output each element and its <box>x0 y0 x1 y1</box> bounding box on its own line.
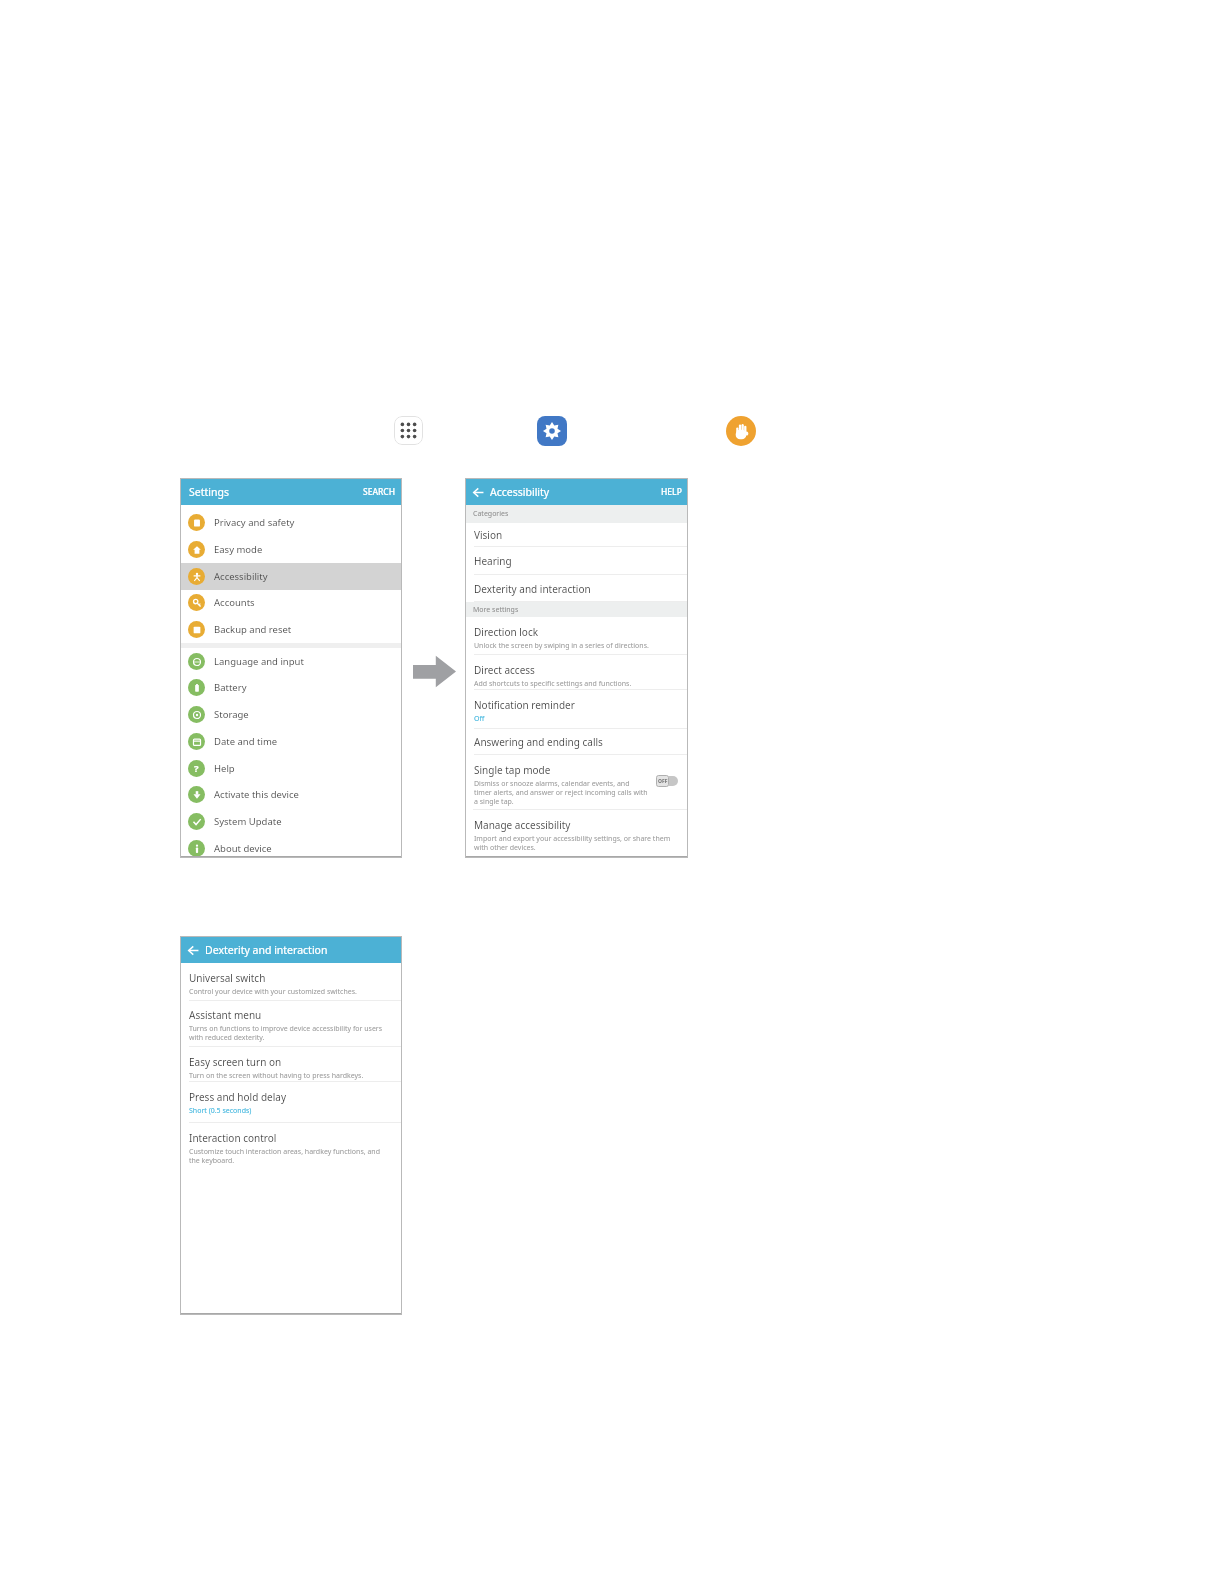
staticText: Vision <box>474 528 503 542</box>
button[interactable]: Assistant menu <box>180 1000 402 1047</box>
button[interactable]: Direction lock <box>465 617 688 655</box>
button[interactable]: Back <box>471 485 485 499</box>
staticText: Universal switch <box>189 971 266 985</box>
staticText: Categories <box>473 509 509 519</box>
staticText: Dexterity and interaction <box>205 943 328 957</box>
staticText: Notification reminder <box>474 698 575 712</box>
staticText: Turns on functions to improve device acc… <box>189 1024 383 1042</box>
staticText: Easy mode <box>214 543 263 556</box>
staticText: Privacy and safety <box>214 516 295 529</box>
staticText: Hearing <box>474 554 512 568</box>
staticText: Direct access <box>474 663 535 677</box>
button[interactable]: Storage <box>180 701 402 728</box>
staticText: Battery <box>214 681 247 694</box>
staticText: Language and input <box>214 655 304 668</box>
staticText: Date and time <box>214 735 278 748</box>
staticText: Assistant menu <box>189 1008 262 1022</box>
staticText: Dismiss or snooze alarms, calendar event… <box>474 779 648 806</box>
button[interactable]: Accounts <box>180 589 402 616</box>
button[interactable]: Dexterity and interaction <box>465 575 688 602</box>
button[interactable]: Easy mode <box>180 536 402 563</box>
staticText: Press and hold delay <box>189 1090 286 1104</box>
button[interactable]: Language and input <box>180 648 402 675</box>
staticText: Customize touch interaction areas, hardk… <box>189 1147 380 1165</box>
staticText: Help <box>214 762 235 775</box>
button[interactable]: Manage accessibility <box>465 810 688 856</box>
button[interactable]: About device <box>180 835 402 862</box>
button[interactable]: OFF <box>656 774 678 788</box>
staticText: Backup and reset <box>214 623 292 636</box>
button[interactable]: HELP <box>661 482 688 502</box>
staticText: Storage <box>214 708 249 721</box>
button[interactable]: ? <box>180 755 402 782</box>
staticText: Activate this device <box>214 788 299 801</box>
staticText: About device <box>214 842 272 855</box>
staticText: Add shortcuts to specific settings and f… <box>474 679 632 689</box>
staticText: OFF <box>658 778 668 785</box>
button[interactable]: Accessibility <box>726 416 756 446</box>
staticText: Turn on the screen without having to pre… <box>189 1071 364 1081</box>
staticText: Accounts <box>214 596 255 609</box>
staticText: Off <box>474 714 485 724</box>
staticText: Accessibility <box>490 485 550 499</box>
staticText: System Update <box>214 815 282 828</box>
button[interactable]: Backup and reset <box>180 616 402 643</box>
staticText: SEARCH <box>363 486 396 498</box>
button[interactable]: Apps <box>394 416 423 445</box>
staticText: HELP <box>661 486 682 498</box>
button[interactable]: Accessibility <box>180 563 402 590</box>
staticText: Dexterity and interaction <box>474 582 591 596</box>
button[interactable]: Notification reminder <box>465 690 688 729</box>
staticText: Interaction control <box>189 1131 277 1145</box>
button[interactable]: Easy screen turn on <box>180 1047 402 1082</box>
staticText: Single tap mode <box>474 763 551 777</box>
button[interactable]: SEARCH <box>363 482 402 502</box>
staticText: Settings <box>189 485 229 499</box>
staticText: More settings <box>473 605 519 615</box>
button[interactable]: Privacy and safety <box>180 509 402 536</box>
staticText: Short (0.5 seconds) <box>189 1106 252 1116</box>
button[interactable]: System Update <box>180 808 402 835</box>
button[interactable]: Universal switch <box>180 963 402 1001</box>
staticText: Control your device with your customized… <box>189 987 357 997</box>
button[interactable]: Interaction control <box>180 1123 402 1170</box>
staticText: Accessibility <box>214 570 268 583</box>
staticText: Manage accessibility <box>474 818 571 832</box>
staticText: Easy screen turn on <box>189 1055 282 1069</box>
staticText: ? <box>194 762 199 775</box>
button[interactable]: Back <box>186 943 200 957</box>
staticText: Direction lock <box>474 625 539 639</box>
button[interactable]: Settings <box>537 416 567 446</box>
button[interactable]: Date and time <box>180 728 402 755</box>
button[interactable]: Activate this device <box>180 781 402 808</box>
button[interactable]: Press and hold delay <box>180 1082 402 1123</box>
button[interactable]: Answering and ending calls <box>465 729 688 755</box>
button[interactable]: Hearing <box>465 547 688 575</box>
staticText: Unlock the screen by swiping in a series… <box>474 641 649 651</box>
button[interactable]: Vision <box>465 523 688 547</box>
button[interactable]: Battery <box>180 674 402 701</box>
staticText: Answering and ending calls <box>474 735 603 749</box>
button[interactable]: Direct access <box>465 655 688 690</box>
staticText: Import and export your accessibility set… <box>474 834 671 852</box>
